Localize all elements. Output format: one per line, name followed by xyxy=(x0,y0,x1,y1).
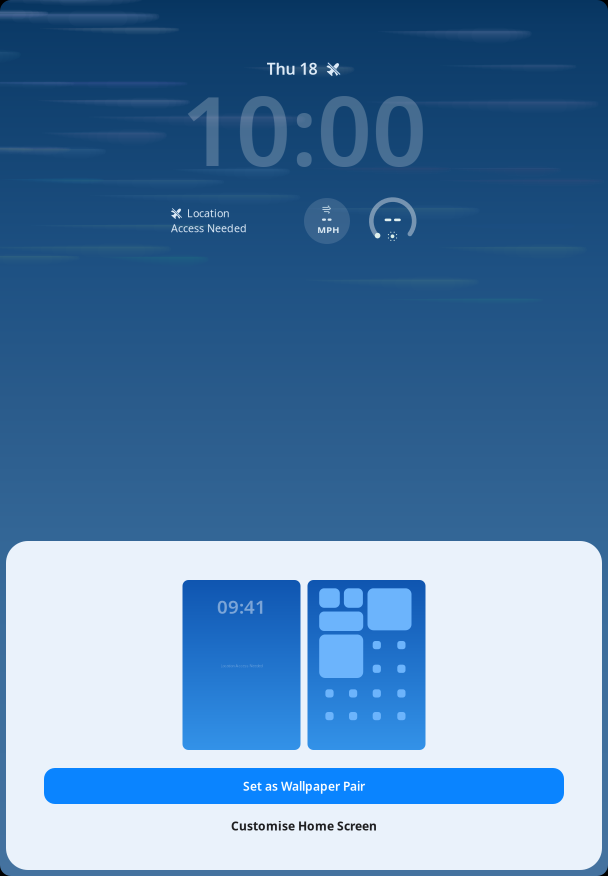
staticText: Location xyxy=(187,206,230,220)
staticText: Set as Wallpaper Pair xyxy=(243,778,365,794)
staticText: Access Needed xyxy=(171,221,247,235)
staticText: 10:00 xyxy=(181,65,427,192)
button[interactable]: Home Screen preview xyxy=(307,580,425,750)
staticText: Customise Home Screen xyxy=(231,818,377,834)
button[interactable]: Set as Wallpaper Pair xyxy=(44,768,564,804)
staticText: 09:41 xyxy=(217,594,266,619)
staticText: Location Access Needed xyxy=(220,663,262,668)
button[interactable]: Lock Screen preview xyxy=(182,580,300,750)
button[interactable]: Customise Home Screen xyxy=(211,804,397,840)
staticText: Thu 18 xyxy=(266,58,317,79)
staticText: MPH xyxy=(317,223,339,236)
